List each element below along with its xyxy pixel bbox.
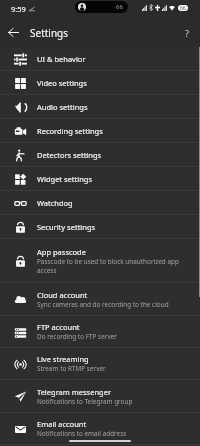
staticText: 66 (116, 3, 123, 11)
staticText: Detectors settings (37, 150, 102, 160)
staticText: Telegram messenger (37, 387, 112, 397)
button[interactable]: Widget settings (0, 167, 200, 191)
button[interactable]: Recording settings (0, 119, 200, 143)
button[interactable]: Help (173, 19, 200, 46)
button[interactable]: Video settings (0, 71, 200, 95)
staticText: Watchdog (37, 198, 73, 208)
button[interactable]: App passcode (0, 239, 200, 283)
staticText: FTP account (37, 322, 80, 332)
button[interactable]: Audio settings (0, 95, 200, 119)
staticText: ? (185, 27, 189, 39)
staticText: UI & behavior (37, 54, 86, 64)
button[interactable]: Telegram messenger (0, 380, 200, 413)
staticText: Notifications to Telegram group (37, 397, 133, 406)
button[interactable]: Cloud account (0, 283, 200, 316)
button[interactable]: Email account (0, 413, 200, 445)
staticText: Passcode to be used to block unauthorize… (37, 257, 192, 275)
staticText: App passcode (37, 247, 86, 257)
staticText: Recording settings (37, 126, 103, 136)
staticText: Widget settings (37, 174, 93, 184)
staticText: Video settings (37, 78, 87, 88)
staticText: 66 (180, 5, 186, 11)
staticText: Email account (37, 419, 87, 429)
staticText: Notifications to email address (37, 429, 127, 438)
button[interactable]: Detectors settings (0, 143, 200, 167)
button[interactable]: Watchdog (0, 191, 200, 215)
button[interactable]: Back (0, 19, 27, 46)
button[interactable]: UI & behavior (0, 47, 200, 71)
staticText: Audio settings (37, 102, 88, 112)
button[interactable]: FTP account (0, 316, 200, 348)
staticText: Cloud account (37, 290, 88, 300)
staticText: 9:59 (11, 4, 26, 14)
button[interactable]: Security settings (0, 215, 200, 239)
staticText: Live streaming (37, 354, 89, 364)
button[interactable]: Live streaming (0, 348, 200, 380)
staticText: Sync cameras and do recording to the clo… (37, 300, 169, 309)
staticText: Do recording to FTP server (37, 332, 117, 341)
staticText: Stream to RTMP server (37, 364, 106, 373)
staticText: Settings (30, 26, 69, 40)
staticText: Security settings (37, 222, 96, 232)
